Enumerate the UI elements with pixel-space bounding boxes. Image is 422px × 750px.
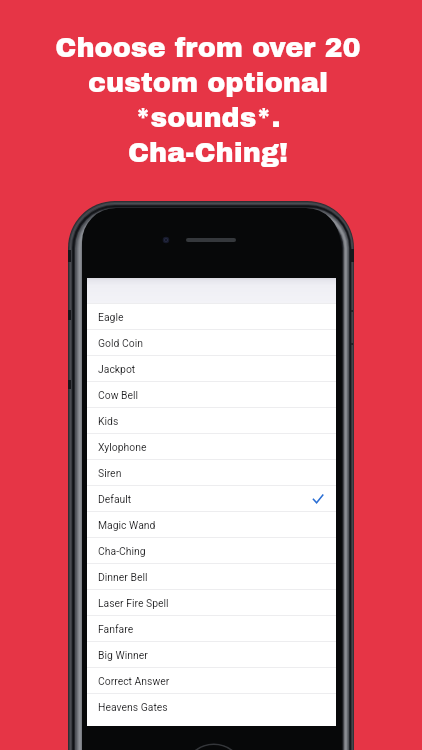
staticText: Magic Wand (98, 519, 156, 531)
staticText: Cha-Ching (98, 545, 146, 557)
staticText: Choose from over 20 custom optional *sou… (0, 33, 419, 168)
button[interactable]: Heavens Gates (87, 693, 336, 719)
button[interactable]: Kids (87, 407, 336, 433)
staticText: Fanfare (98, 623, 134, 635)
staticText: Correct Answer (98, 675, 170, 687)
button[interactable]: Eagle (87, 303, 336, 329)
staticText: Xylophone (98, 441, 147, 453)
staticText: Big Winner (98, 649, 148, 661)
staticText: Kids (98, 415, 119, 427)
staticText: Default (98, 493, 132, 505)
staticText: Gold Coin (98, 337, 143, 349)
button[interactable]: Laser Fire Spell (87, 589, 336, 615)
button[interactable]: Magic Wand (87, 511, 336, 537)
button[interactable]: Xylophone (87, 433, 336, 459)
button[interactable]: Cha-Ching (87, 537, 336, 563)
button[interactable]: Correct Answer (87, 667, 336, 693)
staticText: Heavens Gates (98, 701, 168, 713)
staticText: Eagle (98, 311, 124, 323)
staticText: Dinner Bell (98, 571, 148, 583)
button[interactable]: Cow Bell (87, 381, 336, 407)
staticText: Jackpot (98, 363, 136, 375)
other: Selected (313, 494, 323, 504)
staticText: Cow Bell (98, 389, 139, 401)
button[interactable]: Default (87, 485, 336, 511)
button[interactable]: Gold Coin (87, 329, 336, 355)
staticText: Laser Fire Spell (98, 597, 169, 609)
button[interactable]: Dinner Bell (87, 563, 336, 589)
button[interactable]: Siren (87, 459, 336, 485)
button[interactable]: Big Winner (87, 641, 336, 667)
button[interactable]: Fanfare (87, 615, 336, 641)
staticText: Siren (98, 467, 122, 479)
button[interactable]: Jackpot (87, 355, 336, 381)
